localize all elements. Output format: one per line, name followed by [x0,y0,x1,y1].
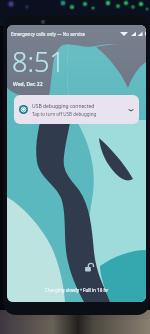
staticText: Wed, Dec 22 [13,81,43,88]
staticText: Emergency calls only — No service [11,31,86,37]
staticText: USB debugging connected [32,103,95,110]
other: Unlocked [84,262,95,273]
staticText: Charging slowly • Full in 16 hr [7,287,146,293]
staticText: 8:51 [12,43,65,80]
staticText: Tap to turn off USB debugging [32,111,97,117]
button[interactable]: USB debugging connected [14,95,139,124]
other: Expand [128,107,134,113]
